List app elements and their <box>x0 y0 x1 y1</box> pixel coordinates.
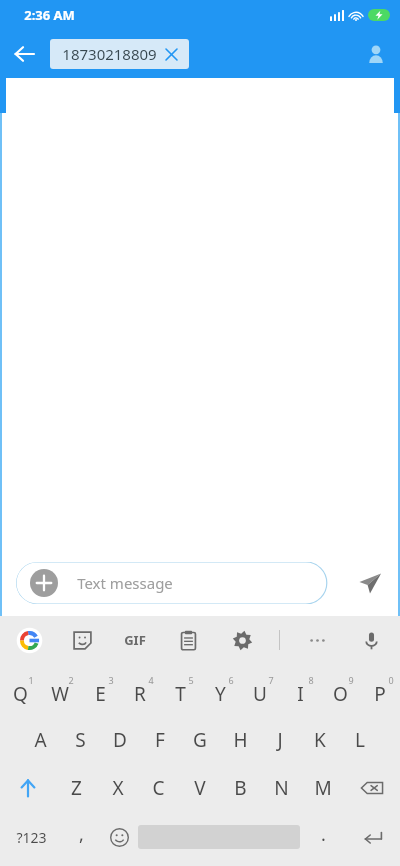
staticText: I <box>297 681 304 707</box>
staticText: 4 <box>148 674 154 686</box>
staticText: B <box>234 775 247 801</box>
button[interactable]: I <box>280 668 320 716</box>
staticText: F <box>155 727 165 753</box>
staticText: T <box>175 681 186 707</box>
staticText: O <box>333 681 348 707</box>
button[interactable]: W <box>40 668 80 716</box>
button[interactable]: Settings <box>225 623 259 657</box>
button[interactable]: Back <box>0 30 48 78</box>
button[interactable]: Stickers <box>65 623 99 657</box>
staticText: 1 <box>28 674 34 686</box>
button[interactable]: E <box>80 668 120 716</box>
staticText: D <box>113 727 127 753</box>
staticText: 5 <box>188 674 194 686</box>
button[interactable]: D <box>100 716 140 764</box>
staticText: R <box>134 681 146 707</box>
staticText: Q <box>13 681 28 707</box>
button[interactable]: 18730218809 <box>50 39 189 69</box>
button[interactable]: GIF <box>118 623 152 657</box>
staticText: X <box>112 775 124 801</box>
button[interactable]: Emoji <box>100 812 138 862</box>
staticText: A <box>34 727 47 753</box>
staticText: . <box>321 822 326 847</box>
button[interactable]: Voice input <box>354 623 388 657</box>
button[interactable]: B <box>220 764 261 812</box>
staticText: W <box>51 681 69 707</box>
staticText: V <box>194 775 206 801</box>
button[interactable]: Y <box>200 668 240 716</box>
staticText: Text message <box>77 573 173 593</box>
staticText: K <box>314 727 326 753</box>
staticText: Z <box>71 775 82 801</box>
staticText: , <box>79 822 84 847</box>
button[interactable]: Q <box>0 668 40 716</box>
staticText: P <box>374 681 386 707</box>
staticText: H <box>233 727 248 753</box>
button[interactable]: Text message <box>16 562 336 604</box>
button[interactable]: F <box>140 716 180 764</box>
staticText: 6 <box>228 674 234 686</box>
staticText: E <box>95 681 106 707</box>
staticText: 18730218809 <box>62 44 157 64</box>
button[interactable]: Z <box>56 764 97 812</box>
staticText: 9 <box>348 674 354 686</box>
button[interactable]: More options <box>300 623 334 657</box>
staticText: 0 <box>388 674 394 686</box>
staticText: GIF <box>124 631 146 649</box>
button[interactable]: R <box>120 668 160 716</box>
button[interactable]: Clipboard <box>171 623 205 657</box>
button[interactable]: N <box>261 764 302 812</box>
button[interactable]: A <box>20 716 60 764</box>
staticText: G <box>193 727 207 753</box>
button[interactable]: S <box>60 716 100 764</box>
button[interactable]: , <box>62 812 100 862</box>
button[interactable]: O <box>320 668 360 716</box>
button[interactable]: H <box>220 716 260 764</box>
button[interactable]: M <box>302 764 343 812</box>
staticText: J <box>277 727 283 753</box>
staticText: L <box>355 727 365 753</box>
staticText: Y <box>215 681 226 707</box>
button[interactable]: C <box>138 764 179 812</box>
staticText: M <box>314 775 332 801</box>
staticText: C <box>152 775 165 801</box>
button[interactable]: K <box>300 716 340 764</box>
button[interactable]: G <box>180 716 220 764</box>
staticText: 7 <box>268 674 274 686</box>
staticText: 2 <box>68 674 74 686</box>
staticText: 3 <box>108 674 114 686</box>
button[interactable]: Contact <box>352 30 400 78</box>
button[interactable]: V <box>179 764 220 812</box>
button[interactable]: Shift <box>0 764 56 812</box>
button[interactable]: Send <box>350 563 390 603</box>
staticText: U <box>253 681 267 707</box>
button[interactable]: U <box>240 668 280 716</box>
button[interactable]: . <box>300 812 346 862</box>
staticText: 8 <box>308 674 314 686</box>
button[interactable]: Google <box>12 623 46 657</box>
button[interactable]: X <box>97 764 138 812</box>
button[interactable]: J <box>260 716 300 764</box>
button[interactable]: Backspace <box>343 764 400 812</box>
staticText: ?123 <box>16 828 47 847</box>
button[interactable]: P <box>360 668 400 716</box>
button[interactable]: Enter <box>346 812 400 862</box>
staticText: N <box>274 775 289 801</box>
staticText: S <box>75 727 86 753</box>
button[interactable]: ?123 <box>0 812 62 862</box>
staticText: 2:36 AM <box>24 6 75 24</box>
button[interactable]: T <box>160 668 200 716</box>
button[interactable]: L <box>340 716 380 764</box>
